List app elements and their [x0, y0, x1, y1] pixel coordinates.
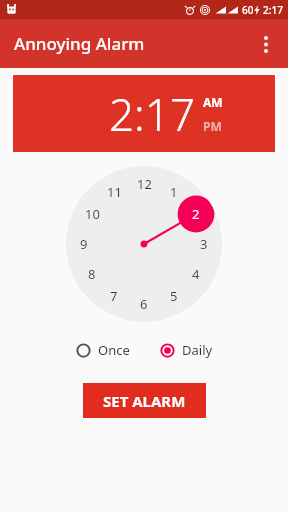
button[interactable]: PM: [203, 118, 222, 134]
staticText: Once: [98, 341, 130, 359]
staticText: 2:17: [263, 3, 283, 17]
staticText: 8: [88, 265, 96, 283]
staticText: 60: [242, 3, 254, 17]
button[interactable]: More options: [244, 22, 288, 66]
staticText: 3: [200, 235, 208, 253]
staticText: 5: [170, 287, 178, 305]
staticText: 12: [137, 175, 152, 193]
staticText: 11: [107, 183, 122, 201]
staticText: Annoying Alarm: [14, 32, 145, 55]
staticText: Daily: [182, 341, 213, 359]
staticText: 7: [110, 287, 118, 305]
staticText: 10: [85, 205, 100, 223]
button[interactable]: 2:17: [13, 75, 275, 152]
staticText: 4: [192, 265, 200, 283]
button[interactable]: Once: [72, 337, 134, 363]
staticText: 2: [192, 205, 200, 223]
button[interactable]: SET ALARM: [83, 383, 206, 418]
staticText: 1: [170, 183, 178, 201]
button[interactable]: AM: [203, 94, 223, 110]
staticText: 9: [80, 235, 88, 253]
button[interactable]: Daily: [156, 337, 217, 363]
button[interactable]: Hour picker, 2 selected: [66, 166, 222, 322]
staticText: SET ALARM: [103, 391, 186, 411]
staticText: 2:17: [109, 84, 196, 144]
staticText: 6: [140, 295, 148, 313]
